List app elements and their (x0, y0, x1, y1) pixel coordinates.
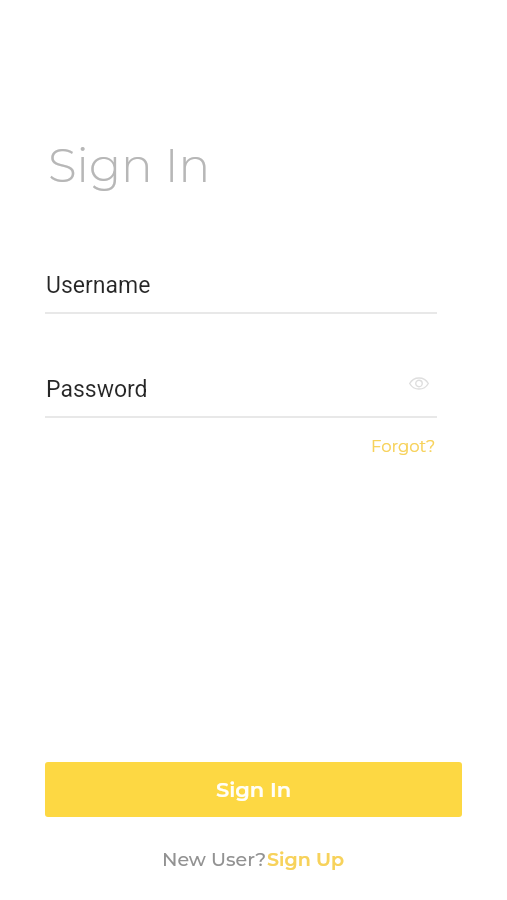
staticText: Username (46, 272, 151, 299)
button[interactable]: Sign In (45, 762, 462, 817)
staticText: Sign Up (267, 848, 344, 871)
staticText: Forgot? (371, 436, 436, 456)
staticText: Sign In (216, 777, 292, 803)
staticText: Password (46, 376, 148, 403)
button[interactable]: Show password (400, 365, 437, 401)
staticText: New User? (162, 848, 267, 871)
staticText: Sign In (48, 137, 211, 194)
button[interactable]: Forgot? (367, 434, 440, 458)
button[interactable]: Sign Up (267, 848, 344, 871)
